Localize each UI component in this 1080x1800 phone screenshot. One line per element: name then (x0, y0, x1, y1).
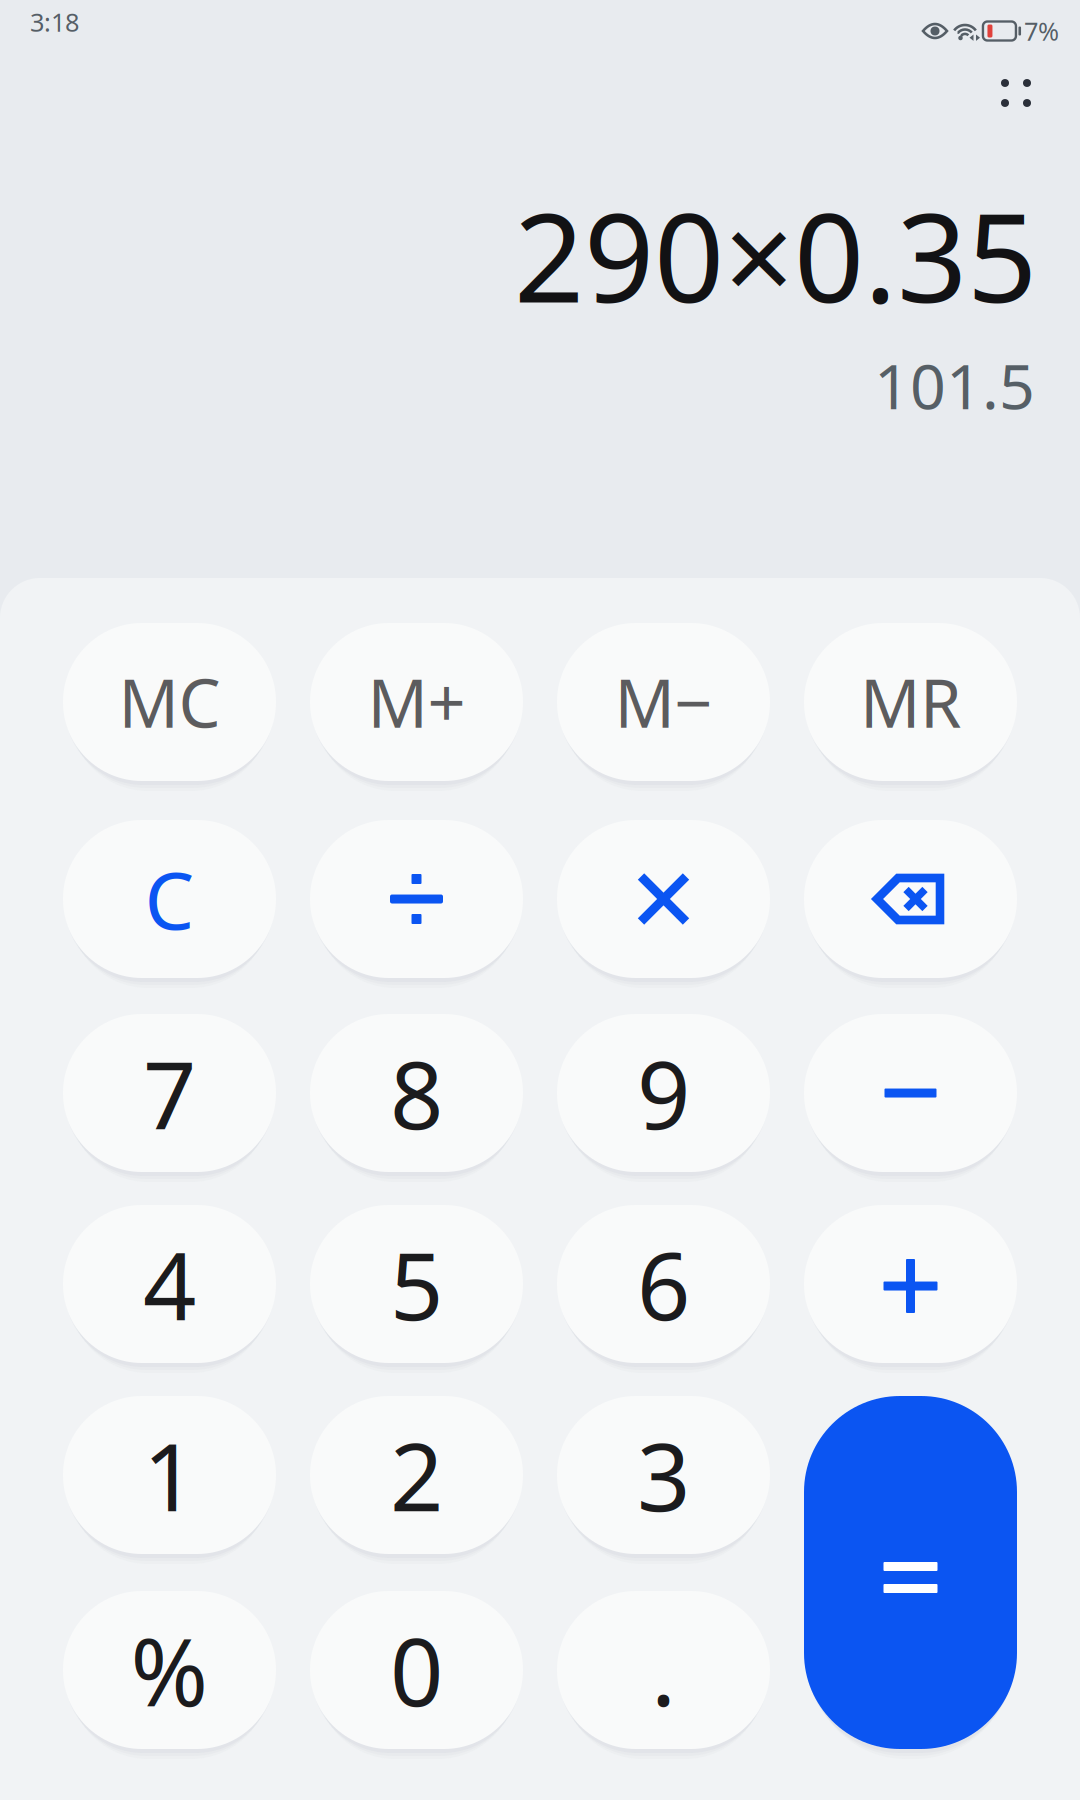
staticText: 2 (390, 1413, 443, 1537)
button[interactable]: MC (63, 623, 276, 781)
button[interactable]: 5 (310, 1205, 523, 1363)
button[interactable]: Multiply (557, 820, 770, 978)
button[interactable]: 6 (557, 1205, 770, 1363)
staticText: 3 (637, 1413, 690, 1537)
button[interactable]: 9 (557, 1014, 770, 1172)
button[interactable]: M minus (557, 623, 770, 781)
staticText: 1 (143, 1413, 196, 1537)
button[interactable]: Plus (804, 1205, 1017, 1363)
button[interactable]: 7 (63, 1014, 276, 1172)
staticText: 9 (637, 1031, 690, 1155)
button[interactable]: 0 (310, 1591, 523, 1749)
button[interactable]: Minus (804, 1014, 1017, 1172)
staticText: 7% (1024, 14, 1059, 48)
staticText: MR (860, 658, 961, 746)
staticText: 4 (143, 1222, 196, 1346)
button[interactable]: 2 (310, 1396, 523, 1554)
button[interactable]: MR (804, 623, 1017, 781)
staticText: 7 (143, 1031, 196, 1155)
staticText: M+ (367, 658, 465, 746)
staticText: . (651, 1608, 676, 1732)
button[interactable]: Backspace (804, 820, 1017, 978)
button[interactable]: More options (968, 45, 1064, 141)
staticText: 3:18 (30, 5, 79, 39)
staticText: C (144, 847, 194, 951)
button[interactable]: Divide (310, 820, 523, 978)
button[interactable]: 8 (310, 1014, 523, 1172)
button[interactable]: Percent (63, 1591, 276, 1749)
staticText: % (130, 1608, 208, 1732)
button[interactable]: M plus (310, 623, 523, 781)
staticText: 0 (390, 1608, 443, 1732)
staticText: 6 (637, 1222, 690, 1346)
button[interactable]: 1 (63, 1396, 276, 1554)
button[interactable]: Decimal point (557, 1591, 770, 1749)
staticText: M− (614, 658, 712, 746)
staticText: 290×0.35 (514, 174, 1037, 336)
button[interactable]: 4 (63, 1205, 276, 1363)
staticText: MC (118, 658, 220, 746)
staticText: 5 (390, 1222, 443, 1346)
button[interactable]: Clear (63, 820, 276, 978)
button[interactable]: 3 (557, 1396, 770, 1554)
staticText: 8 (390, 1031, 443, 1155)
button[interactable]: Equals (804, 1396, 1017, 1749)
staticText: 101.5 (874, 343, 1035, 427)
